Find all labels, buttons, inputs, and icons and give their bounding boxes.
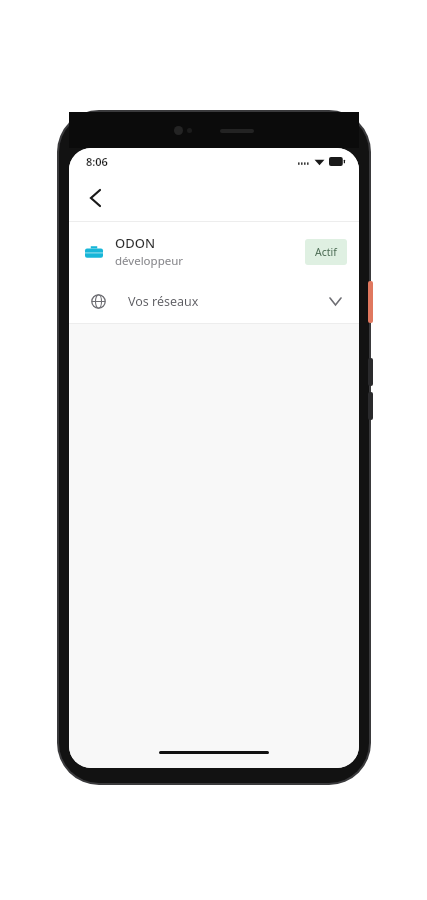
staticText: Actif bbox=[315, 245, 337, 259]
staticText: 8:06 bbox=[86, 154, 108, 169]
button[interactable]: Back bbox=[75, 178, 115, 218]
button[interactable]: ODON bbox=[69, 222, 359, 279]
button[interactable]: Vos réseaux bbox=[69, 279, 359, 323]
button[interactable]: Actif bbox=[305, 239, 347, 265]
staticText: développeur bbox=[115, 253, 184, 269]
staticText: Vos réseaux bbox=[128, 293, 330, 310]
staticText: ODON bbox=[115, 234, 155, 252]
